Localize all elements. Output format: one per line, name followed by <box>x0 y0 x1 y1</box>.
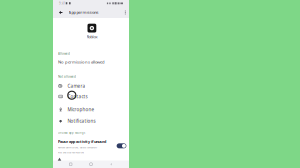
staticText: 9:41 <box>59 1 66 5</box>
staticText: Notifications <box>68 118 96 124</box>
button[interactable]: Recent apps <box>66 160 75 168</box>
button[interactable]: More options <box>122 9 128 16</box>
button[interactable]: Back <box>107 160 116 168</box>
staticText: Remove permissions, delete temporary <box>58 146 97 149</box>
button[interactable]: Notifications <box>53 117 129 126</box>
button[interactable]: Camera <box>53 81 129 90</box>
staticText: Pause app activity if unused <box>58 139 106 144</box>
button[interactable]: Back <box>57 9 64 16</box>
button[interactable]: Contacts <box>53 92 129 101</box>
staticText: Microphone <box>68 106 95 113</box>
staticText: Contacts <box>68 93 88 100</box>
staticText: App permissions <box>69 10 99 15</box>
staticText: No permissions allowed <box>58 59 105 65</box>
staticText: Roblox <box>86 34 97 39</box>
staticText: files and stop notifications <box>58 151 84 154</box>
button[interactable]: Pause app activity if unused <box>53 139 129 153</box>
staticText: Not allowed <box>58 75 76 79</box>
staticText: Unused app settings <box>58 131 85 135</box>
button[interactable]: Home <box>87 160 95 168</box>
staticText: Camera <box>68 83 86 89</box>
staticText: Allowed <box>58 52 70 56</box>
button[interactable]: Microphone <box>53 105 129 114</box>
